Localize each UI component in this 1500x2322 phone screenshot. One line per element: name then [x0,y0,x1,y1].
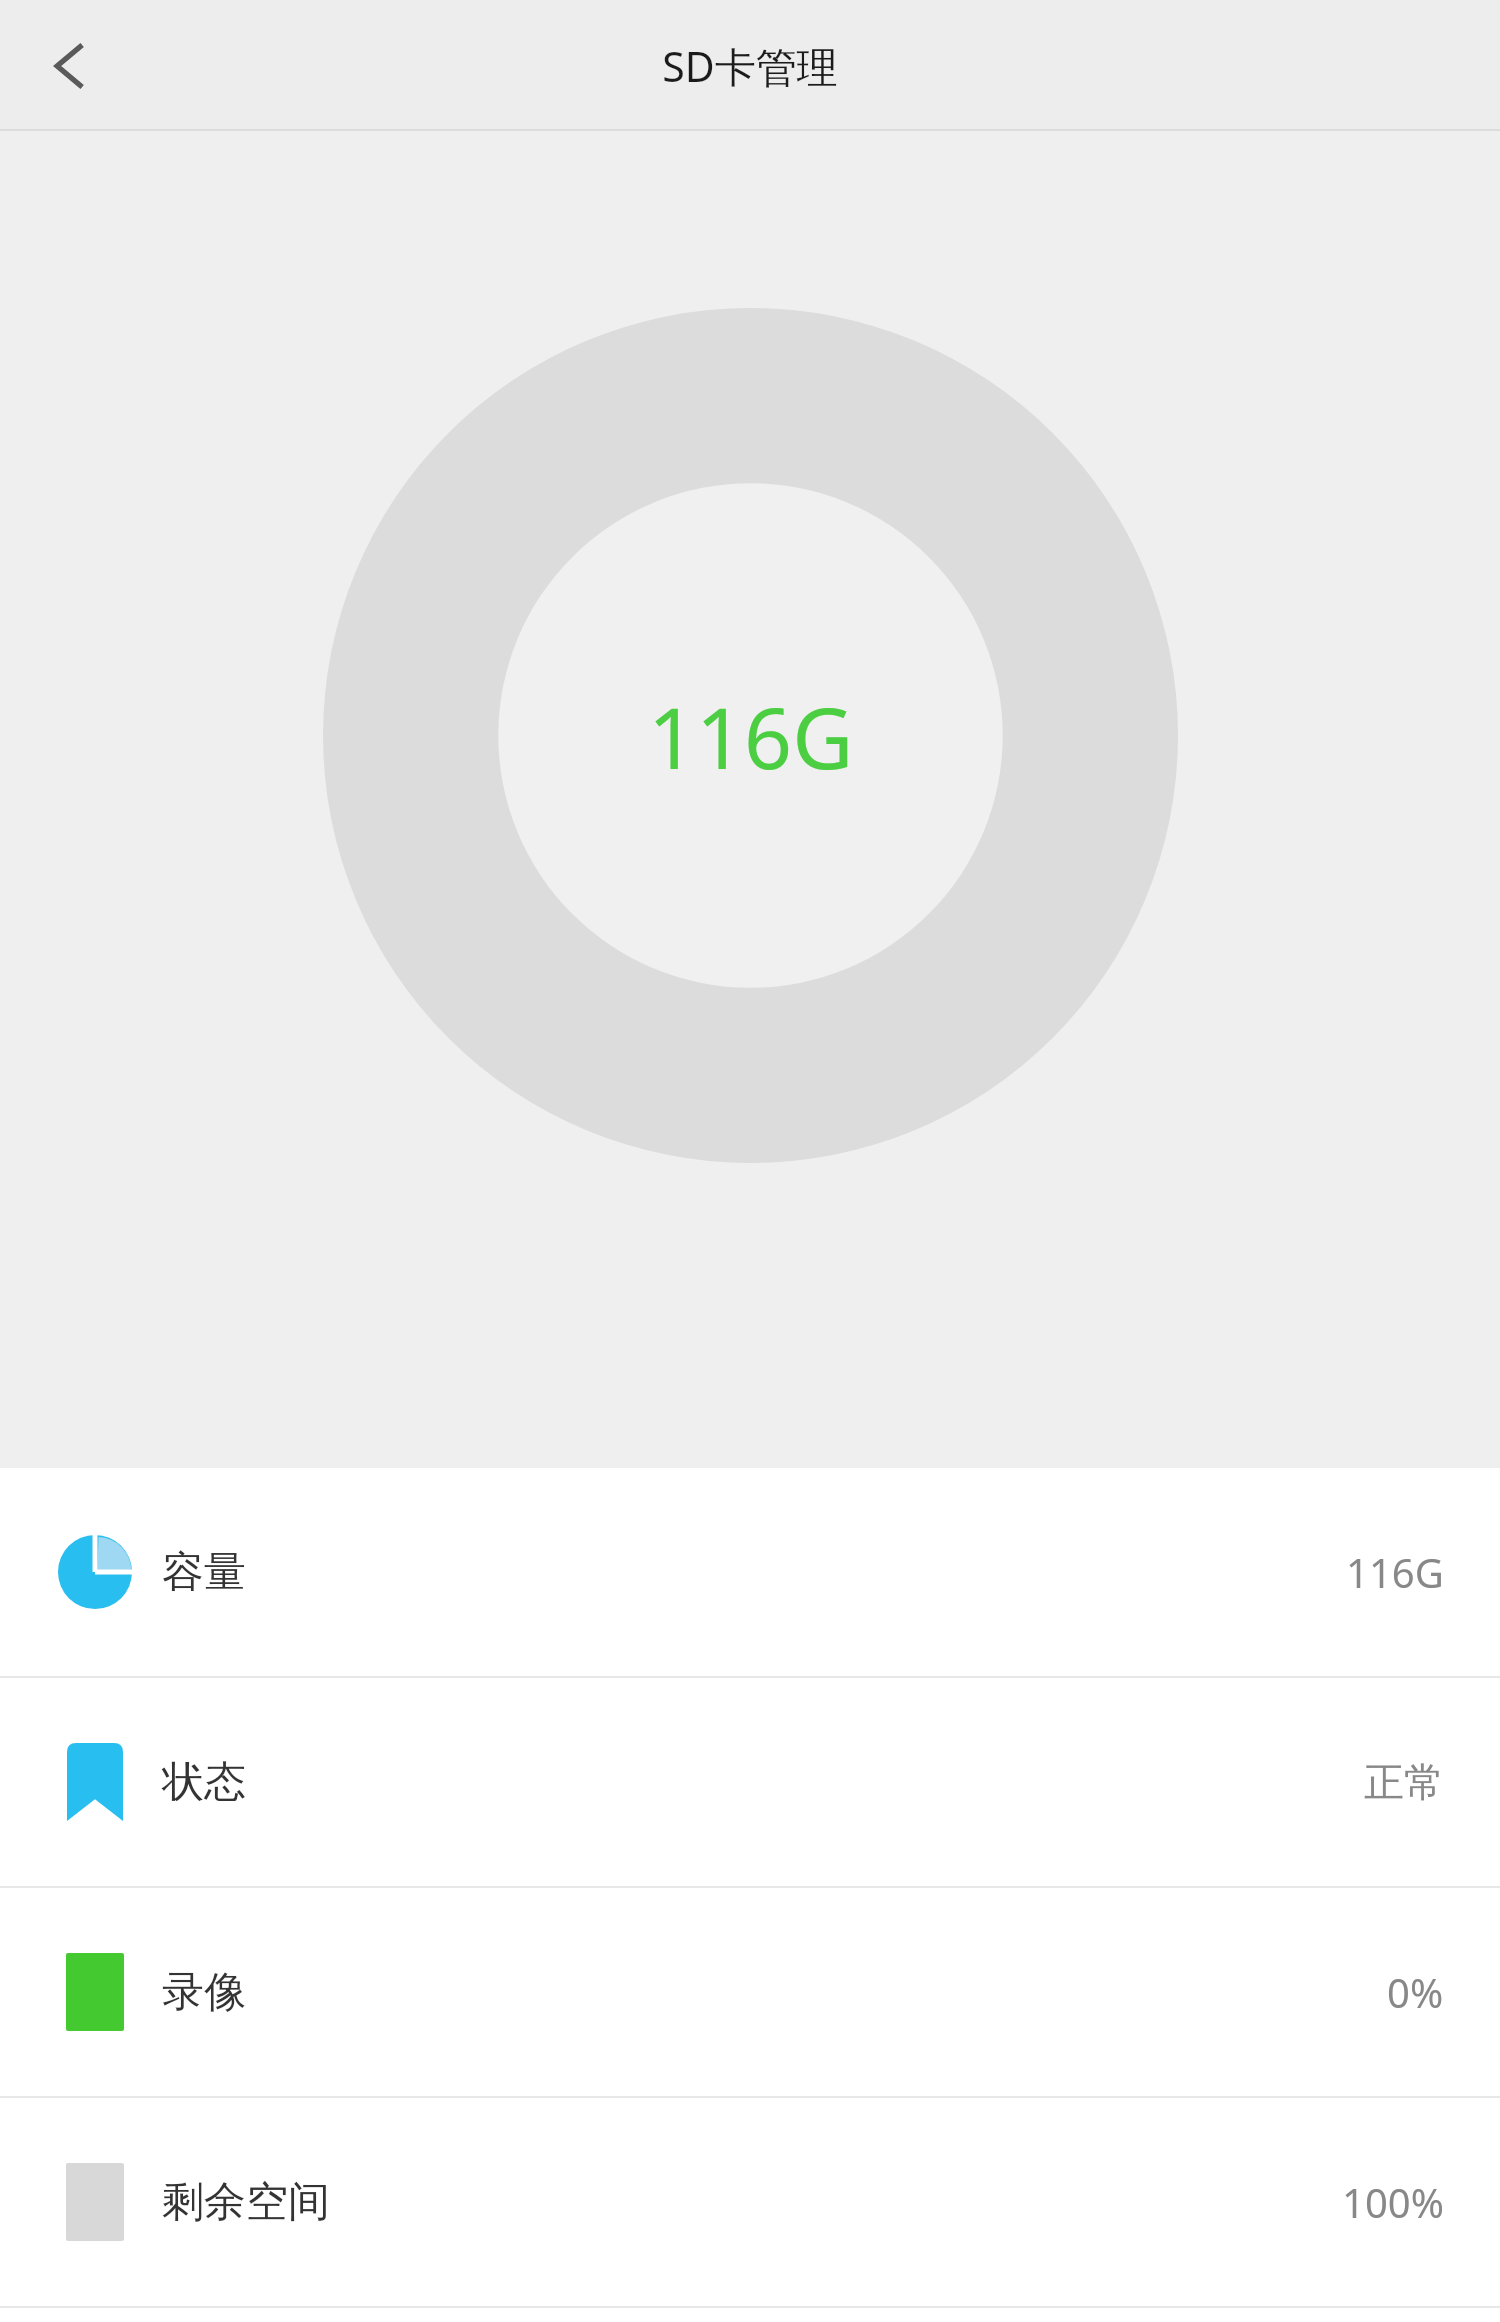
staticText: SD卡管理 [662,38,838,94]
staticText: 116G [1346,1545,1444,1599]
button[interactable]: 容量 [0,1468,1500,1676]
staticText: 正常 [1364,1757,1444,1807]
staticText: 容量 [162,1546,246,1599]
staticText: 状态 [162,1756,246,1809]
staticText: 116G [648,679,854,793]
staticText: 录像 [162,1966,246,2019]
staticText: 100% [1342,2175,1444,2229]
button[interactable]: 状态 [0,1678,1500,1886]
staticText: 剩余空间 [162,2176,330,2229]
button[interactable]: Back [26,22,114,110]
staticText: 0% [1387,1965,1444,2019]
button[interactable]: 录像 [0,1888,1500,2096]
button[interactable]: 剩余空间 [0,2098,1500,2306]
